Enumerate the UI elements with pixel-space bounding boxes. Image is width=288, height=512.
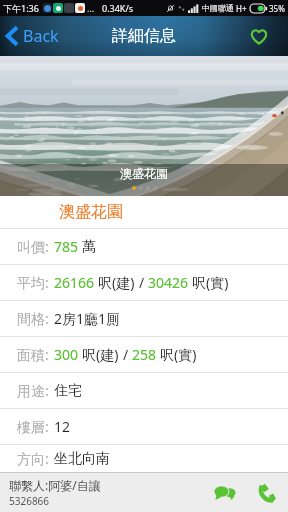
staticText: 呎(實)	[160, 345, 197, 364]
staticText: /	[139, 273, 148, 292]
button[interactable]: Message	[204, 473, 246, 512]
button[interactable]: Call	[246, 473, 288, 512]
staticText: 2房1廳1厠	[54, 309, 121, 328]
staticText: 5326866	[9, 494, 50, 508]
staticText: 呎(建)	[82, 345, 123, 364]
staticText: 呎(實)	[192, 273, 229, 292]
staticText: 坐北向南	[54, 450, 110, 468]
button[interactable]: 面積:	[0, 337, 288, 372]
staticText: 澳盛花園	[59, 202, 123, 222]
button[interactable]: 樓層:	[0, 409, 288, 444]
staticText: 258	[132, 345, 160, 364]
staticText: 樓層:	[17, 417, 49, 436]
staticText: 詳細信息	[112, 26, 176, 46]
staticText: 方向:	[17, 449, 49, 468]
staticText: 下午1:36	[3, 2, 39, 14]
staticText: ...	[87, 2, 95, 14]
button[interactable]: 叫價:	[0, 229, 288, 264]
staticText: 785	[54, 237, 82, 256]
button[interactable]: 間格:	[0, 301, 288, 336]
staticText: 35%	[269, 3, 285, 14]
staticText: Back	[23, 25, 59, 47]
button[interactable]: Favourite	[239, 16, 288, 56]
staticText: 30426	[148, 273, 192, 292]
staticText: 面積:	[17, 345, 49, 364]
staticText: 間格:	[17, 309, 49, 328]
staticText: 萬	[82, 238, 96, 256]
staticText: 用途:	[17, 381, 49, 400]
staticText: 聯繫人:阿婆/自讓	[9, 477, 101, 493]
staticText: /	[123, 345, 132, 364]
staticText: H+	[236, 3, 247, 14]
button[interactable]: 方向:	[0, 445, 288, 472]
staticText: 中國聯通	[202, 3, 234, 13]
staticText: 12	[54, 417, 71, 436]
staticText: 呎(建)	[98, 273, 139, 292]
button[interactable]: 用途:	[0, 373, 288, 408]
staticText: 平均:	[17, 273, 49, 292]
button[interactable]: 平均:	[0, 265, 288, 300]
staticText: 26166	[54, 273, 98, 292]
staticText: 300	[54, 345, 82, 364]
button[interactable]: Back	[0, 16, 67, 56]
staticText: 澳盛花園	[120, 166, 168, 181]
staticText: 住宅	[54, 382, 82, 400]
staticText: 0.34K/s	[102, 2, 134, 14]
staticText: 叫價:	[17, 237, 49, 256]
